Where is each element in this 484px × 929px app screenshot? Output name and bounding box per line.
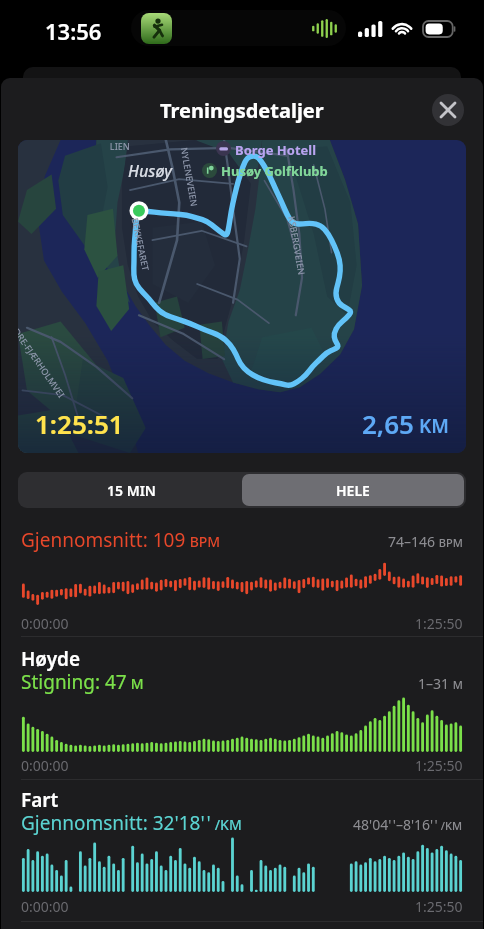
button[interactable]: 15 MIN: [20, 474, 242, 506]
button[interactable]: HELE: [242, 474, 464, 506]
staticText: KM: [414, 413, 449, 439]
staticText: 74–146: [388, 532, 436, 551]
staticText: 0:00:00: [21, 756, 69, 775]
staticText: Borge Hotell: [235, 141, 317, 159]
staticText: Stigning: 47: [21, 669, 127, 695]
staticText: 0:00:00: [21, 897, 69, 916]
button[interactable]: Lukk: [432, 94, 464, 126]
staticText: Gjennomsnitt: 32'18' ': [21, 810, 211, 836]
staticText: 0:00:00: [21, 614, 69, 633]
button[interactable]: Husøy: [18, 140, 466, 453]
staticText: Fart: [21, 787, 59, 813]
staticText: 1:25:50: [415, 614, 463, 633]
staticText: BPM: [436, 535, 463, 550]
staticText: HELE: [336, 481, 370, 500]
staticText: BPM: [186, 532, 221, 551]
staticText: Husøy Golfklubb: [221, 162, 328, 180]
staticText: Gjennomsnitt: 109: [21, 527, 186, 553]
staticText: M: [127, 674, 144, 693]
staticText: 2,65: [362, 406, 414, 441]
staticText: M: [450, 677, 463, 692]
staticText: 13:56: [45, 16, 102, 46]
staticText: 1:25:51: [35, 406, 124, 441]
staticText: 1–31: [418, 674, 450, 693]
staticText: 48'04' '–8'16' ': [353, 815, 438, 834]
staticText: /KM: [438, 818, 463, 833]
staticText: Høyde: [21, 646, 81, 672]
staticText: 1:25:50: [415, 897, 463, 916]
staticText: 1:25:50: [415, 756, 463, 775]
staticText: 15 MIN: [107, 481, 156, 500]
staticText: Husøy: [128, 160, 172, 182]
staticText: Treningsdetaljer: [160, 97, 324, 124]
staticText: /KM: [211, 815, 242, 834]
